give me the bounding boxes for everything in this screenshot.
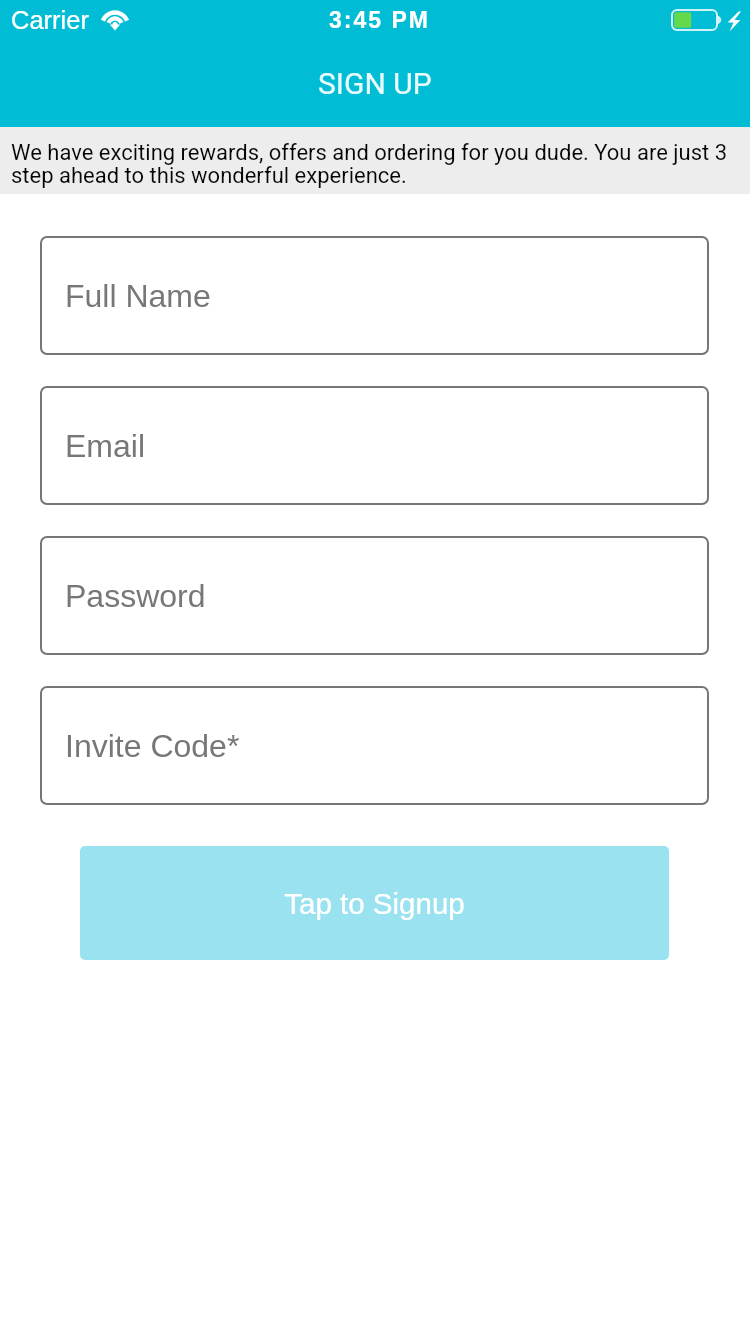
- staticText: Invite Code*: [65, 728, 240, 764]
- staticText: 3:45 PM: [329, 7, 430, 33]
- button[interactable]: Tap to Signup: [80, 846, 669, 960]
- staticText: Carrier: [11, 6, 89, 34]
- button[interactable]: Full Name: [40, 236, 709, 355]
- staticText: Tap to Signup: [284, 887, 465, 920]
- staticText: Full Name: [65, 278, 211, 314]
- button[interactable]: Email: [40, 386, 709, 505]
- staticText: SIGN UP: [318, 66, 432, 101]
- staticText: Password: [65, 578, 206, 614]
- staticText: Email: [65, 428, 146, 464]
- button[interactable]: Invite Code*: [40, 686, 709, 805]
- other: Wi-Fi: [100, 9, 130, 31]
- staticText: We have exciting rewards, offers and ord…: [11, 140, 728, 188]
- button[interactable]: Password: [40, 536, 709, 655]
- other: Battery charging: [668, 7, 743, 33]
